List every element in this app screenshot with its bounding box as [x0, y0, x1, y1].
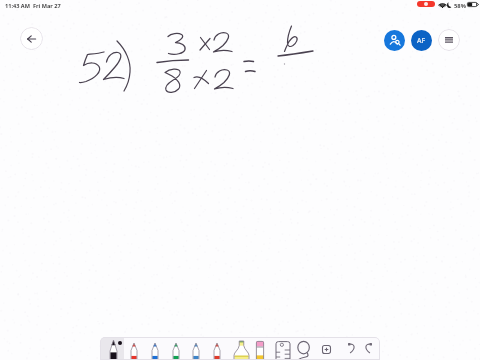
button[interactable]: Redo — [359, 337, 377, 360]
button[interactable]: Pen — [166, 337, 186, 360]
staticText: 11:43 AM — [5, 2, 30, 10]
staticText: AF — [417, 36, 426, 46]
staticText: 58% — [454, 2, 466, 10]
button[interactable]: Back — [20, 27, 43, 50]
button[interactable]: Pen — [124, 337, 144, 360]
button[interactable]: Lasso select — [294, 337, 314, 360]
button[interactable]: Ask a tutor — [384, 30, 405, 51]
button[interactable]: Eraser — [251, 337, 269, 360]
button[interactable]: Pen — [104, 337, 124, 360]
button[interactable]: Menu — [438, 29, 460, 51]
button[interactable]: Undo — [343, 337, 361, 360]
button[interactable]: Ruler — [273, 337, 293, 360]
button[interactable]: Pen — [207, 337, 227, 360]
button[interactable]: Add — [317, 337, 335, 360]
button[interactable]: Highlighter — [231, 337, 251, 360]
button[interactable]: Pen — [186, 337, 206, 360]
button[interactable]: Pen — [145, 337, 165, 360]
staticText: Fri Mar 27 — [33, 2, 61, 10]
button[interactable]: AF — [411, 30, 432, 51]
button[interactable]: Pen black selected — [100, 337, 124, 360]
